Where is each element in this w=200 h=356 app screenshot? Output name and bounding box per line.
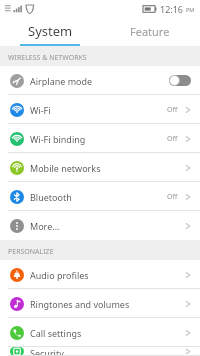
staticText: 12:16 bbox=[160, 3, 184, 15]
staticText: Security bbox=[30, 347, 64, 356]
staticText: WIRELESS & NETWORKS bbox=[8, 53, 87, 63]
staticText: Call settings bbox=[30, 327, 82, 339]
button[interactable]: Call settings bbox=[0, 318, 200, 347]
button[interactable]: Security bbox=[0, 347, 200, 356]
button[interactable]: Airplane mode toggle bbox=[169, 75, 191, 86]
staticText: Wi-Fi bbox=[30, 104, 51, 116]
button[interactable]: Audio profiles bbox=[0, 260, 200, 289]
button[interactable]: Airplane mode bbox=[0, 66, 200, 95]
staticText: Audio profiles bbox=[30, 269, 89, 281]
staticText: Ringtones and volumes bbox=[30, 298, 130, 310]
staticText: PERSONALIZE bbox=[8, 247, 54, 257]
button[interactable]: System bbox=[0, 18, 100, 44]
button[interactable]: Bluetooth bbox=[0, 182, 200, 211]
button[interactable]: Mobile networks bbox=[0, 153, 200, 182]
staticText: Airplane mode bbox=[30, 75, 93, 87]
staticText: Off bbox=[167, 192, 178, 202]
button[interactable]: Ringtones and volumes bbox=[0, 289, 200, 318]
button[interactable]: Wi-Fi binding bbox=[0, 124, 200, 153]
staticText: Feature bbox=[130, 24, 170, 39]
staticText: Mobile networks bbox=[30, 162, 101, 174]
button[interactable]: Feature bbox=[100, 18, 200, 44]
staticText: Off bbox=[167, 105, 178, 115]
button[interactable]: More... bbox=[0, 211, 200, 240]
staticText: More... bbox=[30, 220, 60, 232]
staticText: Wi-Fi binding bbox=[30, 133, 86, 145]
staticText: PM bbox=[186, 6, 195, 13]
staticText: Off bbox=[167, 134, 178, 144]
staticText: Bluetooth bbox=[30, 191, 72, 203]
staticText: System bbox=[28, 22, 73, 40]
button[interactable]: Wi-Fi bbox=[0, 95, 200, 124]
